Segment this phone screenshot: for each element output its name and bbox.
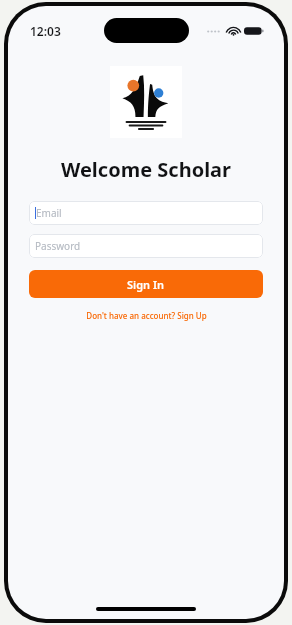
staticText: Don't have an account? Sign Up: [86, 310, 207, 321]
button[interactable]: Sign In: [29, 270, 263, 298]
button[interactable]: Don't have an account? Sign Up: [8, 310, 284, 321]
staticText: Email: [36, 206, 62, 220]
staticText: 12:03: [30, 23, 61, 39]
staticText: Sign In: [127, 277, 165, 292]
button[interactable]: Email: [29, 201, 263, 225]
staticText: Welcome Scholar: [8, 156, 284, 183]
staticText: Password: [35, 239, 81, 253]
button[interactable]: Password: [29, 234, 263, 258]
